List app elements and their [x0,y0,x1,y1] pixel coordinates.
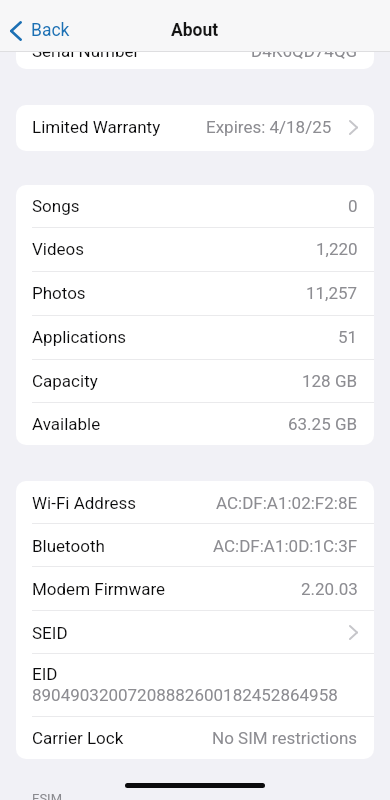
staticText: ESIM [32,791,62,800]
button[interactable]: Bluetooth [16,524,374,567]
staticText: SEID [32,623,68,643]
staticText: Available [32,414,101,434]
staticText: About [171,20,219,41]
staticText: AC:DF:A1:02:F2:8E [216,493,358,513]
staticText: 89049032007208882600182452864958 [32,685,338,705]
button[interactable]: Photos [16,271,374,315]
staticText: Serial Number [32,41,140,61]
button[interactable]: Back [0,15,78,46]
staticText: AC:DF:A1:0D:1C:3F [213,536,358,556]
button[interactable]: EID [16,654,374,716]
button[interactable]: Serial Number [16,26,374,69]
staticText: 51 [338,327,358,347]
staticText: Limited Warranty [32,117,161,137]
staticText: Capacity [32,371,98,391]
staticText: Photos [32,283,86,303]
button[interactable]: Limited Warranty [16,105,374,151]
staticText: 1,220 [316,239,358,259]
staticText: Videos [32,239,85,259]
button[interactable]: Applications [16,315,374,359]
staticText: 11,257 [306,283,358,303]
staticText: 128 GB [302,371,358,391]
staticText: EID [32,664,58,684]
button[interactable]: Available [16,402,374,445]
staticText: 0 [348,196,358,216]
staticText: Wi-Fi Address [32,493,137,513]
button[interactable]: Wi-Fi Address [16,481,374,524]
button[interactable]: Songs [16,185,374,227]
button[interactable]: Capacity [16,359,374,402]
staticText: Expires: 4/18/25 [206,117,332,137]
button[interactable]: Modem Firmware [16,567,374,610]
staticText: Bluetooth [32,536,105,556]
button[interactable]: Videos [16,227,374,271]
staticText: Applications [32,327,127,347]
staticText: 2.20.03 [301,579,358,599]
button[interactable]: SEID [16,611,374,654]
staticText: No SIM restrictions [212,728,358,748]
staticText: 63.25 GB [288,414,358,434]
button[interactable]: Carrier Lock [16,716,374,759]
staticText: Carrier Lock [32,728,124,748]
staticText: D4K6QD74QG [251,41,358,61]
staticText: Back [31,20,70,41]
staticText: Songs [32,196,80,216]
staticText: Modem Firmware [32,579,166,599]
